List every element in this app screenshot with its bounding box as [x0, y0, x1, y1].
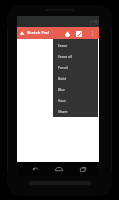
staticText: Erase — [58, 43, 68, 48]
button[interactable]: Recent apps — [75, 162, 91, 176]
button[interactable]: Save — [53, 95, 98, 106]
button[interactable]: Expand — [73, 28, 84, 39]
button[interactable]: Blur — [53, 84, 98, 95]
button[interactable]: Bold — [53, 73, 98, 84]
staticText: Share — [58, 109, 68, 114]
staticText: Bold — [58, 76, 66, 81]
button[interactable]: Back — [27, 162, 43, 176]
staticText: Blur — [58, 87, 65, 92]
button[interactable]: Pencil — [53, 62, 98, 73]
staticText: Pencil — [58, 65, 69, 70]
button[interactable]: More options — [88, 28, 97, 39]
staticText: Sketch Pad — [27, 30, 49, 36]
button[interactable]: Erase all — [53, 51, 98, 62]
staticText: Save — [58, 98, 66, 103]
button[interactable]: Share — [53, 106, 98, 117]
button[interactable]: Colour — [62, 28, 73, 39]
button[interactable]: Erase — [53, 39, 98, 51]
staticText: Erase all — [58, 54, 72, 59]
button[interactable]: Home — [51, 162, 67, 176]
